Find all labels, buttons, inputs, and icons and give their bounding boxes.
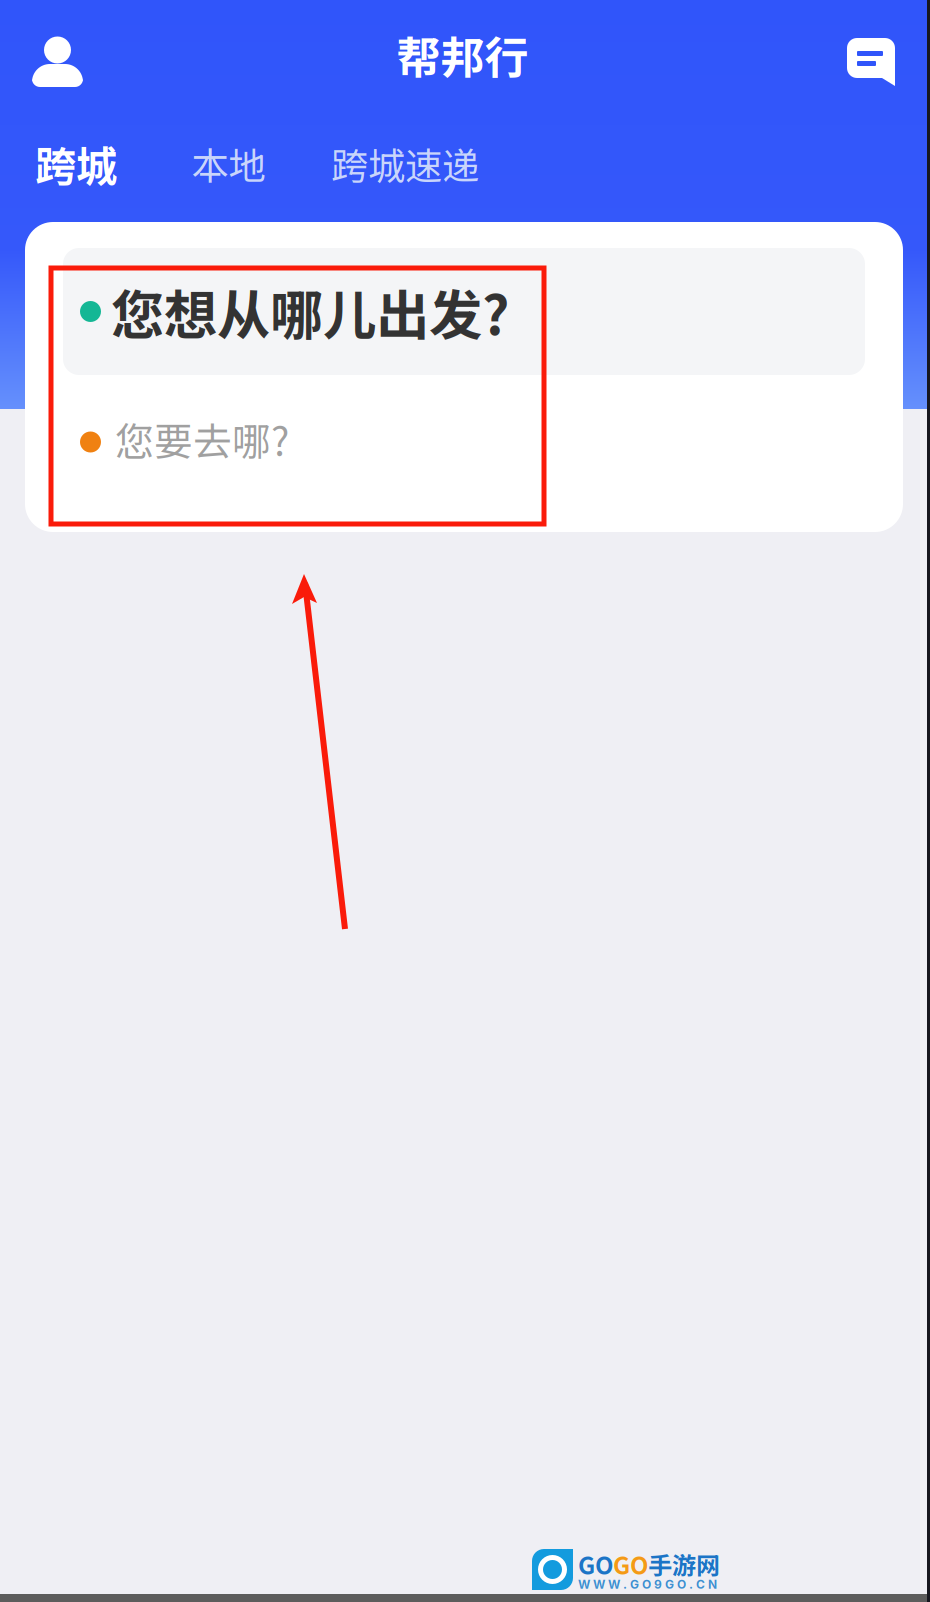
staticText: 跨城 — [35, 134, 117, 193]
staticText: W W W . G O 9 G O . C N — [578, 1577, 717, 1592]
button[interactable]: 您要去哪? — [63, 375, 865, 505]
staticText: 您想从哪儿出发? — [111, 273, 509, 350]
button[interactable]: 您想从哪儿出发? — [63, 248, 865, 375]
button[interactable]: Profile — [0, 0, 113, 114]
staticText: 跨城速递 — [331, 136, 479, 191]
staticText: 手游网 — [648, 1547, 720, 1581]
staticText: GO — [613, 1547, 648, 1581]
staticText: 帮邦行 — [396, 23, 528, 86]
button[interactable]: 跨城速递 — [305, 118, 505, 209]
button[interactable]: 本地 — [152, 118, 305, 209]
button[interactable]: Messages — [812, 0, 930, 114]
staticText: GO — [578, 1547, 613, 1581]
button[interactable]: 跨城 — [0, 118, 152, 209]
staticText: 您要去哪? — [115, 411, 289, 467]
staticText: 本地 — [191, 136, 265, 191]
